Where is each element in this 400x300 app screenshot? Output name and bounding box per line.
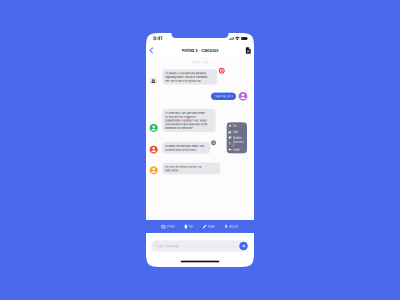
staticText: If I tried early, can I get extra credit…	[95, 35, 216, 44]
staticText: someone send me the notes?	[95, 145, 191, 154]
button[interactable]: the notes are always posted! Top	[87, 188, 261, 223]
staticText: the notes are always posted! Top	[95, 196, 204, 205]
staticText: supplementary readings? Also, would	[95, 57, 220, 66]
staticText: Do you have any suggested	[95, 46, 186, 55]
staticText: Oh damn, we had class today? Can	[95, 134, 212, 142]
button[interactable]: Oh damn, we had class today? Can	[87, 126, 231, 161]
staticText: homework for tomorrow?	[95, 80, 179, 89]
staticText: it be possible to get a head start on th…	[95, 69, 222, 77]
button[interactable]: If I tried early, can I get extra credit…	[87, 27, 247, 96]
